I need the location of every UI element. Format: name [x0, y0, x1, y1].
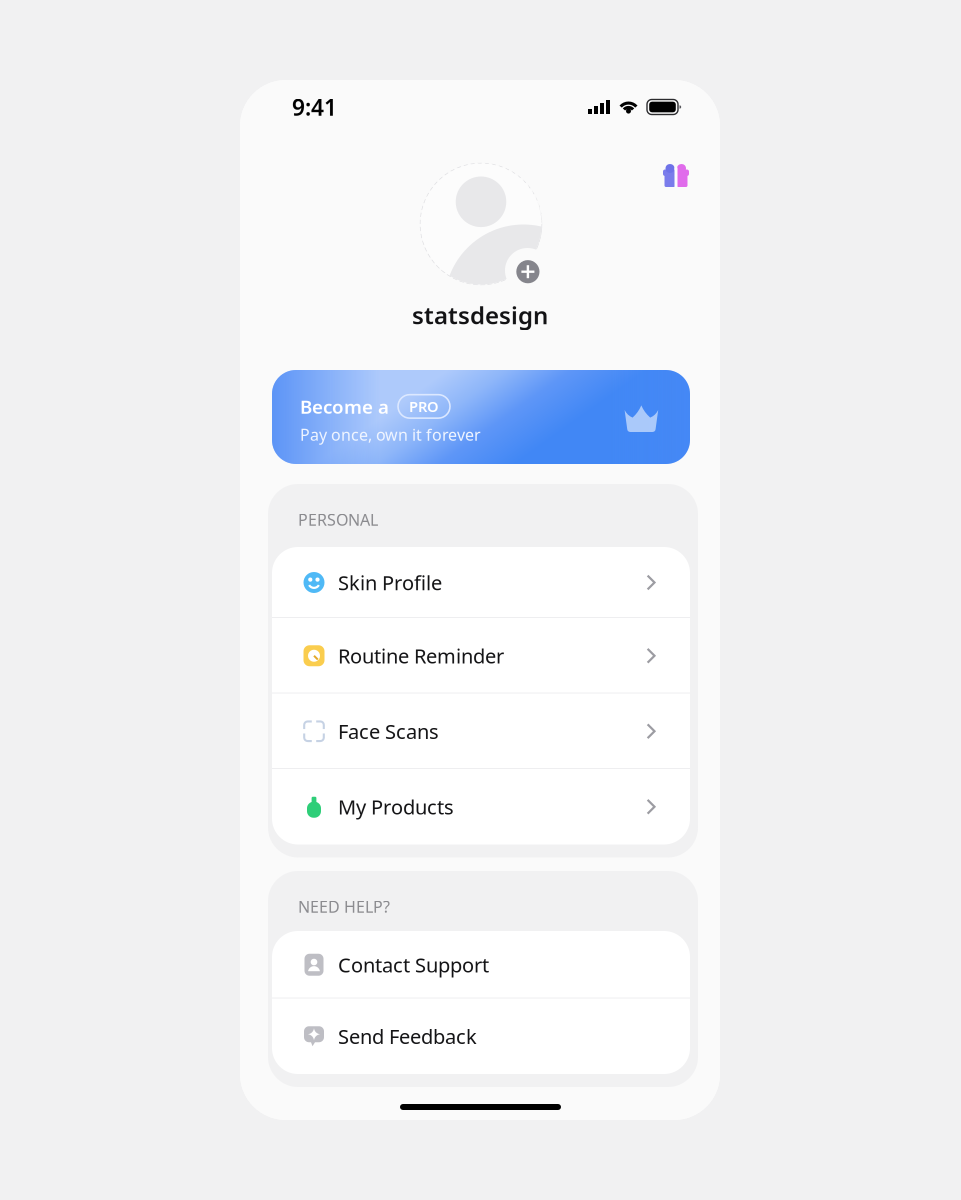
- button[interactable]: Contact Support: [272, 931, 690, 998]
- staticText: NEED HELP?: [298, 896, 390, 917]
- staticText: statsdesign: [412, 299, 548, 331]
- staticText: Become a: [300, 394, 389, 419]
- staticText: PERSONAL: [298, 509, 378, 530]
- button[interactable]: Routine Reminder: [272, 618, 690, 693]
- button[interactable]: Add photo: [505, 248, 550, 293]
- button[interactable]: Face Scans: [272, 693, 690, 769]
- staticText: My Products: [338, 793, 454, 820]
- button[interactable]: My Products: [272, 769, 690, 844]
- staticText: Pay once, own it forever: [300, 424, 481, 445]
- button[interactable]: Send Feedback: [272, 998, 690, 1074]
- button[interactable]: Gifts: [661, 162, 691, 192]
- staticText: Routine Reminder: [338, 642, 504, 669]
- button[interactable]: Edit profile photo: [419, 162, 543, 286]
- staticText: 9:41: [292, 92, 337, 122]
- staticText: Send Feedback: [338, 1023, 477, 1050]
- staticText: Contact Support: [338, 951, 489, 978]
- button[interactable]: Become a: [272, 370, 690, 464]
- staticText: Skin Profile: [338, 569, 442, 596]
- button[interactable]: Skin Profile: [272, 547, 690, 618]
- staticText: Face Scans: [338, 718, 439, 745]
- staticText: PRO: [409, 397, 439, 416]
